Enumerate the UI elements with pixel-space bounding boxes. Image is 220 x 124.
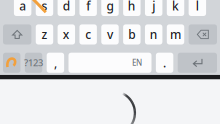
staticText: d <box>63 0 70 14</box>
button[interactable]: n <box>145 24 162 44</box>
button[interactable]: l <box>189 0 206 16</box>
staticText: h <box>128 0 136 14</box>
button[interactable]: z <box>36 24 53 44</box>
button[interactable]: Symbols <box>25 53 42 73</box>
button[interactable]: Shift <box>3 24 31 44</box>
button[interactable]: g <box>101 0 119 16</box>
button[interactable]: Comma <box>47 53 64 73</box>
button[interactable]: Space <box>68 53 151 73</box>
staticText: l <box>196 0 199 14</box>
button[interactable]: j <box>145 0 162 16</box>
staticText: ?123 <box>24 57 43 69</box>
button[interactable]: v <box>101 24 119 44</box>
button[interactable]: Period <box>156 53 173 73</box>
button[interactable]: m <box>167 24 184 44</box>
button[interactable]: Stickers <box>3 53 20 73</box>
button[interactable]: Delete <box>189 24 217 44</box>
button[interactable]: Return <box>178 53 217 73</box>
staticText: z <box>41 26 47 42</box>
staticText: f <box>86 0 90 14</box>
staticText: a <box>19 0 26 14</box>
staticText: c <box>85 26 91 42</box>
staticText: k <box>172 0 179 14</box>
button[interactable]: f <box>79 0 97 16</box>
staticText: b <box>128 26 135 42</box>
staticText: g <box>106 0 113 14</box>
button[interactable]: d <box>58 0 75 16</box>
button[interactable]: x <box>58 24 75 44</box>
button[interactable]: b <box>123 24 140 44</box>
button[interactable]: s <box>36 0 53 16</box>
staticText: , <box>54 55 57 71</box>
button[interactable]: c <box>79 24 97 44</box>
staticText: x <box>63 26 70 42</box>
staticText: n <box>150 26 158 42</box>
staticText: . <box>163 55 166 71</box>
staticText: EN <box>132 57 142 68</box>
button[interactable]: a <box>14 0 31 16</box>
button[interactable]: k <box>167 0 184 16</box>
staticText: m <box>170 26 181 42</box>
staticText: v <box>107 26 113 42</box>
staticText: s <box>41 0 47 14</box>
staticText: j <box>152 0 155 14</box>
button[interactable]: h <box>123 0 140 16</box>
